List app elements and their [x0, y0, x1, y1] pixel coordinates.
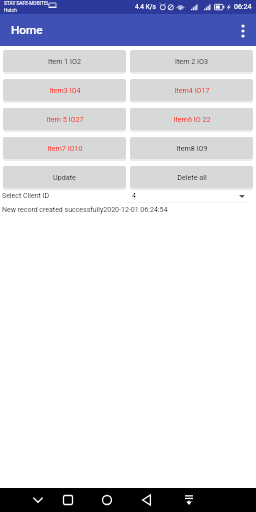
button[interactable]: Delete all — [130, 166, 253, 188]
staticText: Item8 IO9 — [176, 144, 208, 152]
button[interactable]: Recent apps — [56, 488, 80, 512]
staticText: Item 1 IO2 — [48, 57, 81, 65]
staticText: 4.4 K/s — [135, 3, 156, 11]
button[interactable]: Home — [95, 488, 119, 512]
button[interactable]: Item 5 IO27 — [3, 108, 126, 130]
staticText: Item7 IO10 — [47, 144, 83, 152]
staticText: 4 — [132, 192, 136, 200]
staticText: Item 5 IO27 — [46, 115, 84, 123]
staticText: New record created successfully2020-12-0… — [2, 206, 168, 214]
staticText: Home — [11, 23, 43, 37]
button[interactable]: Item6 IO 22 — [130, 108, 253, 130]
button[interactable]: Item3 IO4 — [3, 79, 126, 101]
button[interactable]: Update — [3, 166, 126, 188]
staticText: Update — [53, 173, 76, 181]
staticText: Item3 IO4 — [49, 86, 81, 94]
button[interactable]: Back — [135, 488, 159, 512]
button[interactable]: 4 — [127, 192, 253, 203]
staticText: Delete all — [177, 173, 207, 181]
button[interactable]: Item 2 IO3 — [130, 50, 253, 72]
staticText: Item 2 IO3 — [175, 57, 208, 65]
button[interactable]: Item8 IO9 — [130, 137, 253, 159]
button[interactable]: Switch keyboard — [177, 488, 201, 512]
staticText: STAY SAFE-MOBITEL — [4, 1, 50, 7]
button[interactable]: Item4 IO17 — [130, 79, 253, 101]
staticText: Select Client ID — [2, 192, 126, 200]
button[interactable]: Item7 IO10 — [3, 137, 126, 159]
button[interactable]: Hide keyboard — [26, 488, 50, 512]
staticText: Item4 IO17 — [174, 86, 210, 94]
staticText: 06:24 — [234, 3, 252, 11]
button[interactable]: Item 1 IO2 — [3, 50, 126, 72]
staticText: Hutch — [4, 8, 17, 14]
staticText: Item6 IO 22 — [173, 115, 211, 123]
button[interactable]: More options — [230, 18, 256, 44]
